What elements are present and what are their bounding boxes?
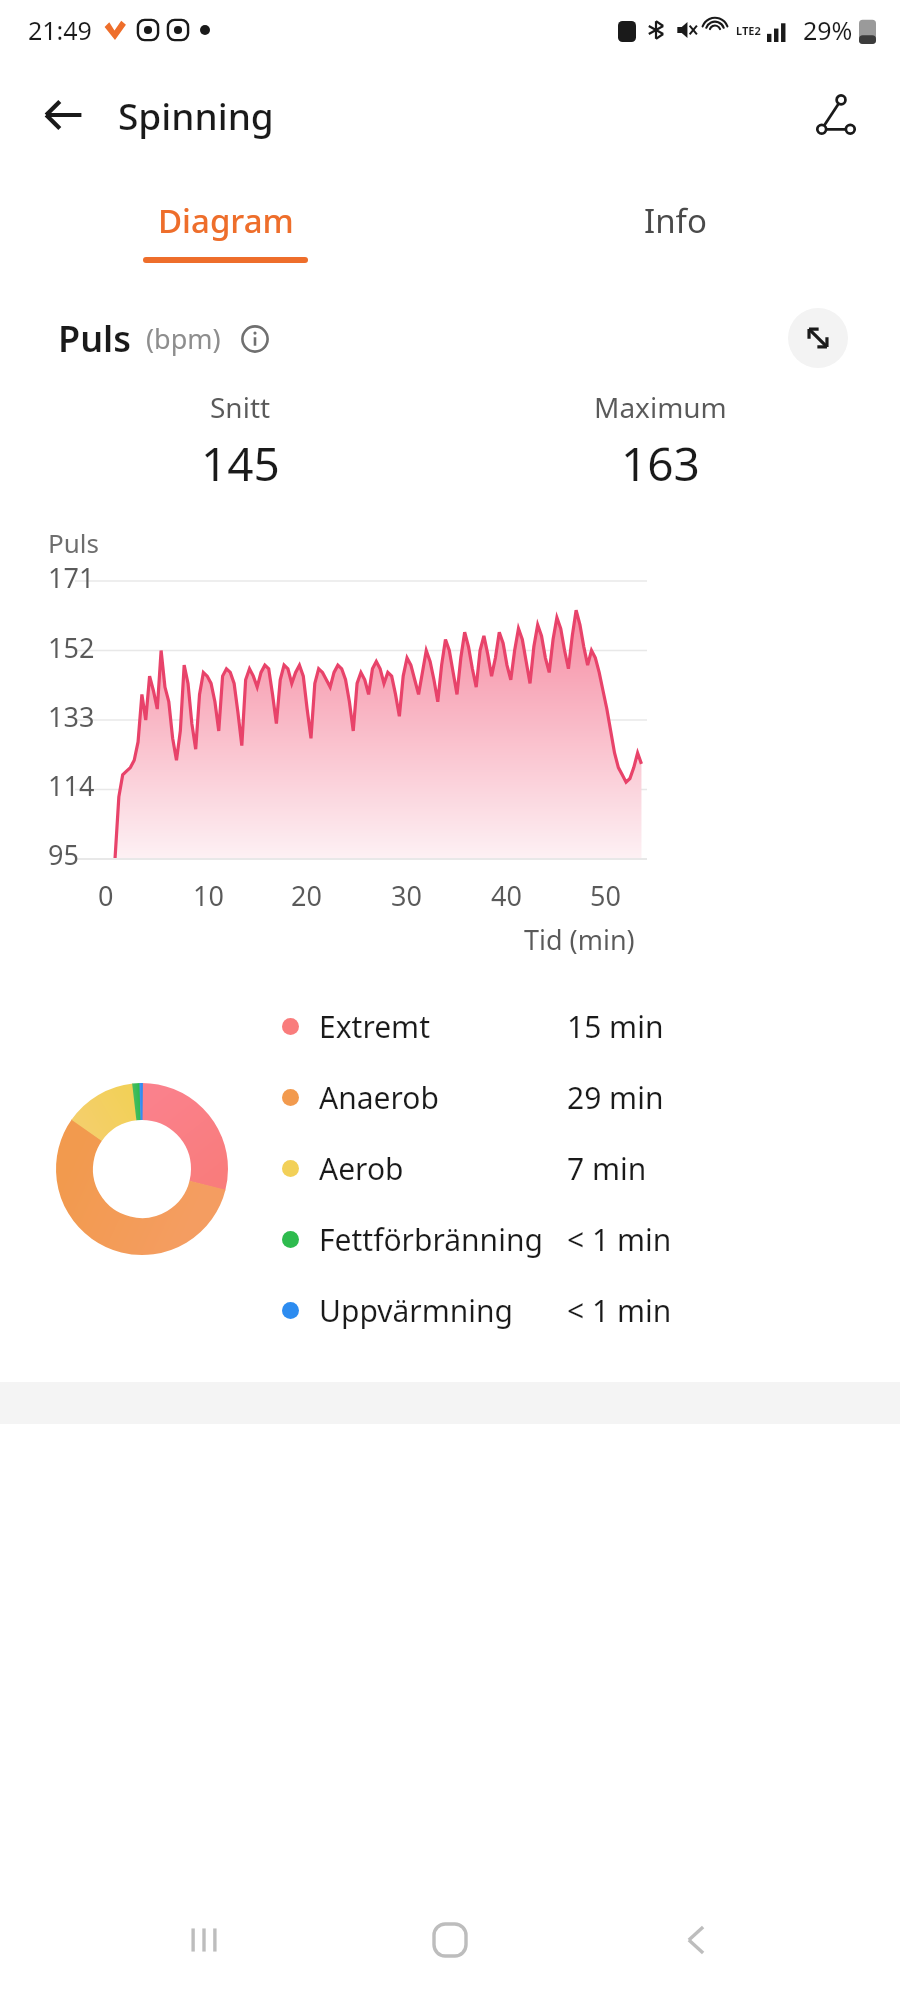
staticText: Extremt (319, 1006, 430, 1047)
staticText: 133 (48, 698, 95, 735)
staticText: 0 (98, 877, 114, 914)
staticText: 50 (590, 877, 621, 914)
staticText: < 1 min (567, 1219, 672, 1260)
staticText: 145 (201, 432, 280, 495)
staticText: 152 (48, 629, 95, 666)
button[interactable]: Diagram (0, 170, 450, 280)
staticText: Info (644, 198, 707, 243)
staticText: 171 (48, 559, 95, 596)
staticText: 30 (391, 877, 422, 914)
button[interactable]: Home (407, 1897, 493, 1983)
staticText: Diagram (158, 198, 294, 243)
staticText: 95 (48, 836, 79, 873)
staticText: 7 min (567, 1148, 647, 1189)
button[interactable]: Recent apps (161, 1897, 247, 1983)
button[interactable]: Extremt (282, 991, 860, 1062)
button[interactable]: Anaerob (282, 1062, 860, 1133)
button[interactable]: Fettförbränning (282, 1204, 860, 1275)
button[interactable]: Share (800, 79, 872, 151)
staticText: Puls (58, 314, 132, 363)
button[interactable]: Expand chart (788, 308, 848, 368)
button[interactable]: Aerob (282, 1133, 860, 1204)
button[interactable]: Information (235, 319, 275, 359)
staticText: LTE2 (736, 23, 761, 38)
staticText: < 1 min (567, 1290, 672, 1331)
staticText: 114 (48, 767, 95, 804)
button[interactable]: Back (30, 82, 96, 148)
staticText: (bpm) (146, 320, 221, 357)
staticText: Fettförbränning (319, 1219, 543, 1260)
staticText: 21:49 (28, 13, 92, 47)
button[interactable]: Back (654, 1897, 740, 1983)
staticText: 163 (621, 432, 700, 495)
staticText: 15 min (567, 1006, 664, 1047)
staticText: Snitt (210, 388, 271, 426)
button[interactable]: Info (450, 170, 900, 280)
staticText: Uppvärmning (319, 1290, 514, 1331)
staticText: Puls (48, 525, 99, 560)
staticText: 20 (291, 877, 322, 914)
staticText: Maximum (594, 388, 727, 426)
staticText: 40 (491, 877, 522, 914)
staticText: Spinning (118, 90, 274, 140)
staticText: Aerob (319, 1148, 404, 1189)
staticText: Anaerob (319, 1077, 439, 1118)
button[interactable]: Uppvärmning (282, 1275, 860, 1346)
staticText: 29% (803, 13, 853, 47)
staticText: Tid (min) (524, 921, 635, 958)
staticText: 29 min (567, 1077, 664, 1118)
staticText: 10 (193, 877, 224, 914)
